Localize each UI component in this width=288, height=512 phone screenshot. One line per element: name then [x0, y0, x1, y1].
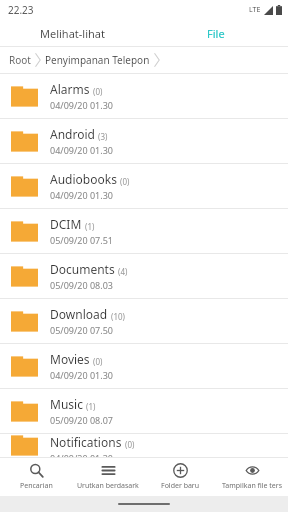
button[interactable]: Root: [7, 50, 33, 70]
staticText: 05/09/20 07.51: [50, 234, 113, 246]
staticText: File: [207, 26, 225, 41]
staticText: 04/09/20 01.30: [50, 99, 113, 111]
staticText: (3): [98, 131, 108, 142]
staticText: Urutkan berdasark: [77, 481, 139, 491]
button[interactable]: File: [144, 20, 288, 46]
staticText: 05/09/20 08.07: [50, 414, 113, 426]
button[interactable]: Melihat-lihat: [0, 20, 144, 46]
button[interactable]: Music: [0, 389, 288, 433]
button[interactable]: Notifications: [0, 434, 288, 457]
button[interactable]: New folder: [144, 458, 216, 496]
button[interactable]: Show hidden files: [216, 458, 288, 496]
button[interactable]: Movies: [0, 344, 288, 388]
staticText: (1): [85, 221, 95, 232]
staticText: Android: [50, 126, 95, 142]
button[interactable]: Penyimpanan Telepon: [43, 50, 152, 70]
staticText: Documents: [50, 261, 115, 277]
staticText: LTE: [249, 5, 261, 15]
staticText: Pencarian: [20, 481, 53, 491]
button[interactable]: Audiobooks: [0, 164, 288, 208]
staticText: 04/09/20 01.30: [50, 452, 113, 457]
staticText: 05/09/20 08.03: [50, 279, 113, 291]
staticText: Music: [50, 396, 83, 412]
button[interactable]: Search: [0, 458, 72, 496]
staticText: Movies: [50, 351, 90, 367]
staticText: Notifications: [50, 434, 122, 450]
staticText: (0): [125, 439, 135, 450]
staticText: (0): [93, 86, 103, 97]
staticText: (0): [120, 176, 130, 187]
staticText: Alarms: [50, 81, 90, 97]
staticText: 04/09/20 01.30: [50, 189, 113, 201]
button[interactable]: Android: [0, 119, 288, 163]
staticText: (4): [118, 266, 128, 277]
button[interactable]: Alarms: [0, 74, 288, 118]
staticText: 04/09/20 01.30: [50, 144, 113, 156]
staticText: Audiobooks: [50, 171, 117, 187]
button[interactable]: DCIM: [0, 209, 288, 253]
staticText: 04/09/20 01.30: [50, 369, 113, 381]
staticText: Root: [9, 53, 31, 67]
staticText: (10): [111, 311, 125, 322]
staticText: Penyimpanan Telepon: [45, 53, 150, 67]
button[interactable]: Sort by: [72, 458, 144, 496]
button[interactable]: Documents: [0, 254, 288, 298]
staticText: Download: [50, 306, 108, 322]
button[interactable]: Download: [0, 299, 288, 343]
staticText: Melihat-lihat: [40, 26, 105, 41]
staticText: DCIM: [50, 216, 82, 232]
staticText: (1): [86, 401, 96, 412]
staticText: 05/09/20 07.50: [50, 324, 113, 336]
staticText: Tampilkan file ters: [222, 481, 283, 491]
staticText: (0): [93, 356, 103, 367]
staticText: 22.23: [8, 3, 34, 17]
staticText: Folder baru: [161, 481, 200, 491]
